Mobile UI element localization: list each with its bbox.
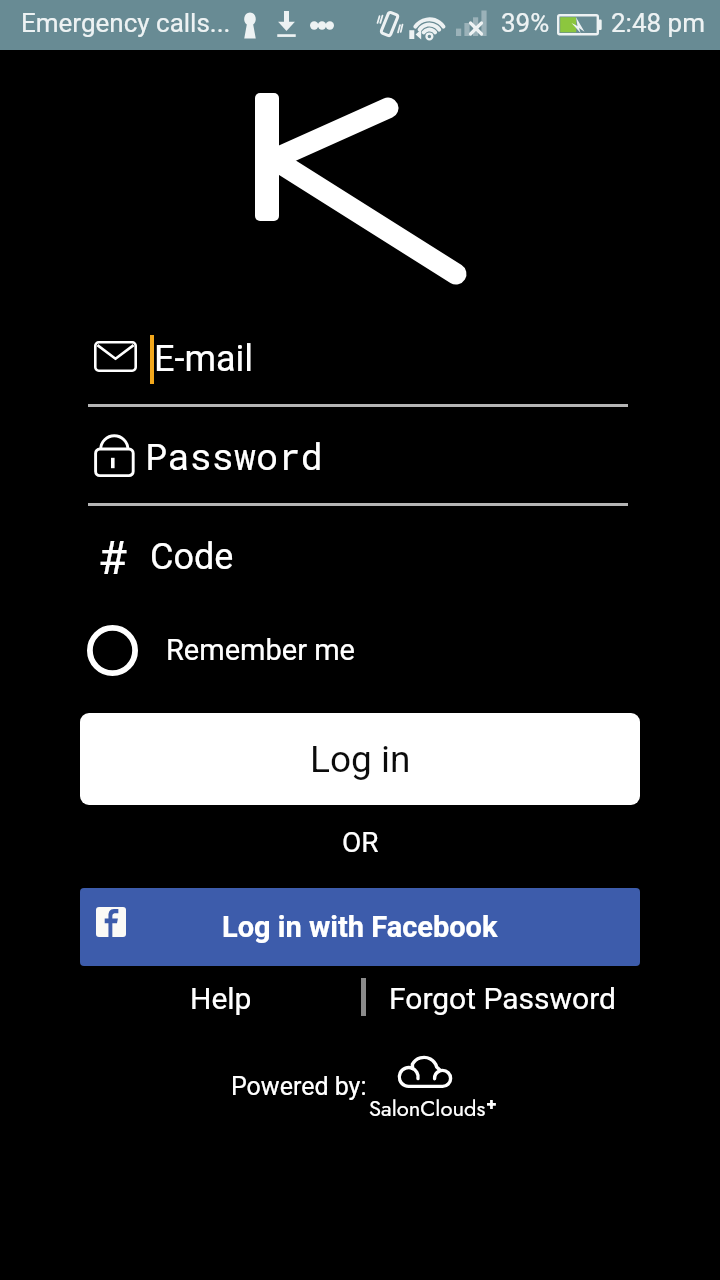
staticText: +: [486, 1092, 497, 1115]
staticText: Forgot Password: [389, 981, 616, 1016]
staticText: 39%: [501, 8, 550, 38]
staticText: E-mail: [154, 338, 254, 380]
staticText: Remember me: [166, 633, 355, 667]
other: App logo: [0, 0, 720, 1280]
staticText: Password: [145, 431, 323, 480]
button[interactable]: #: [88, 522, 628, 592]
button[interactable]: E-mail: [88, 324, 628, 394]
staticText: Powered by:: [231, 1072, 367, 1101]
button[interactable]: Forgot Password: [386, 976, 618, 1020]
staticText: Help: [190, 981, 252, 1016]
staticText: Log in with Facebook: [222, 910, 498, 944]
button[interactable]: Help: [173, 976, 269, 1020]
button[interactable]: Password: [88, 420, 628, 490]
staticText: Log in: [310, 738, 411, 781]
staticText: #: [98, 530, 127, 585]
button[interactable]: Log in with Facebook: [80, 888, 640, 966]
staticText: Emergency calls...: [21, 8, 231, 38]
staticText: Code: [150, 536, 234, 578]
staticText: 2:48 pm: [611, 8, 705, 38]
staticText: SalonClouds: [369, 1092, 486, 1124]
staticText: OR: [342, 826, 379, 859]
button[interactable]: Log in: [80, 713, 640, 805]
other: Facebook: [96, 907, 126, 937]
button[interactable]: Remember me: [80, 618, 370, 682]
other: SalonClouds: [0, 0, 720, 1280]
